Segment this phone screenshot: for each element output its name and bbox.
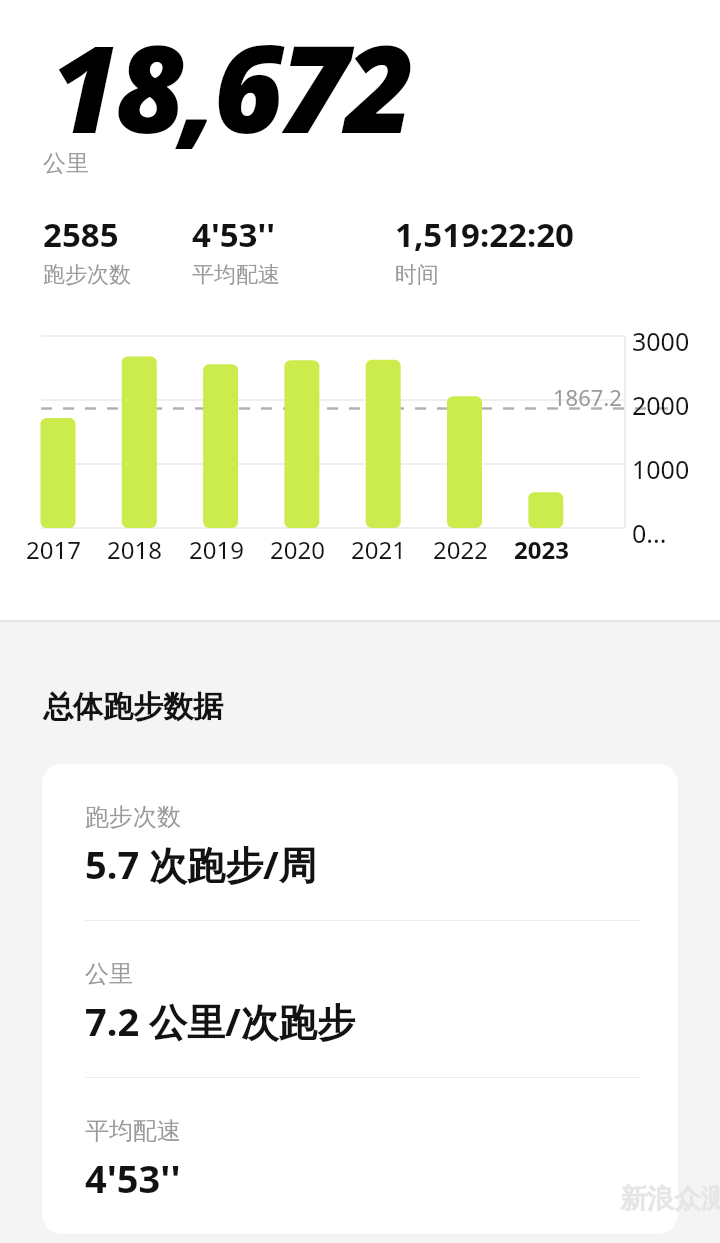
button[interactable]: 公里 xyxy=(42,921,678,1077)
button[interactable]: 4'53'' xyxy=(192,212,280,285)
staticText: 0... xyxy=(632,516,667,550)
staticText: 1867.2 xyxy=(553,382,622,412)
staticText: 时间 xyxy=(395,261,439,289)
staticText: 2022 xyxy=(433,533,488,566)
staticText: 7.2 公里/次跑步 xyxy=(85,995,355,1047)
staticText: 3000 xyxy=(632,324,690,358)
button[interactable]: 跑步次数 xyxy=(42,764,678,920)
button[interactable]: 2585 xyxy=(43,212,131,285)
staticText: 4'53'' xyxy=(85,1152,181,1204)
staticText: 5.7 次跑步/周 xyxy=(85,838,317,890)
staticText: 1000 xyxy=(632,452,690,486)
button[interactable]: 平均配速 xyxy=(42,1078,678,1234)
staticText: 公里 xyxy=(43,149,89,178)
staticText: 4'53'' xyxy=(192,212,275,257)
staticText: 2019 xyxy=(189,533,244,566)
staticText: 18,672 xyxy=(50,5,411,168)
staticText: 公里 xyxy=(85,959,133,989)
staticText: 跑步次数 xyxy=(85,802,181,832)
staticText: 2018 xyxy=(107,533,162,566)
button[interactable]: 1,519:22:20 xyxy=(395,212,574,285)
staticText: 新浪众测 xyxy=(620,1182,720,1216)
staticText: 2023 xyxy=(514,533,569,566)
staticText: 2585 xyxy=(43,212,119,257)
staticText: 2000 xyxy=(632,388,690,422)
staticText: 平均配速 xyxy=(192,261,280,289)
staticText: 1,519:22:20 xyxy=(395,212,574,257)
staticText: 平均配速 xyxy=(85,1116,181,1146)
staticText: 2021 xyxy=(351,533,406,566)
staticText: 总体跑步数据 xyxy=(43,688,223,726)
staticText: 2020 xyxy=(270,533,325,566)
staticText: 2017 xyxy=(26,533,81,566)
staticText: 跑步次数 xyxy=(43,261,131,289)
